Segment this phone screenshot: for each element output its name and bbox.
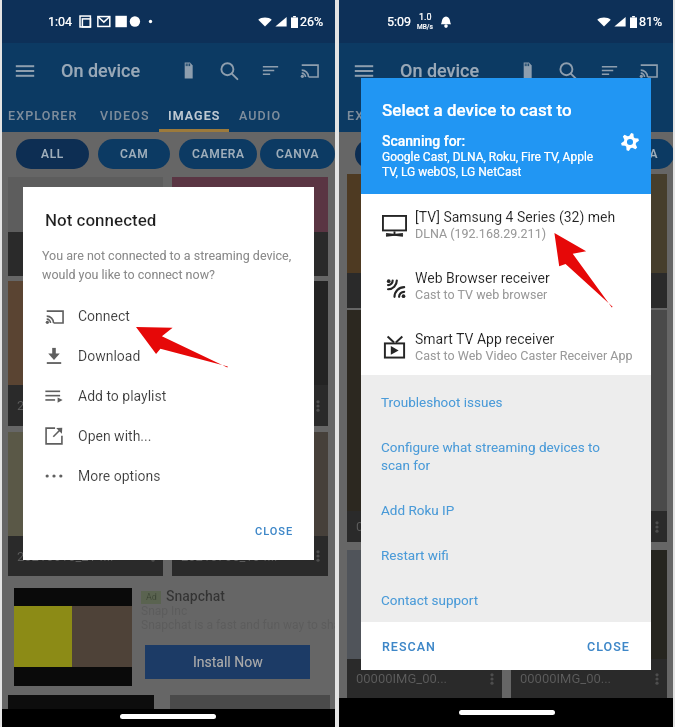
staticText: CAM [120,147,149,161]
button[interactable]: ALL [355,139,428,169]
button[interactable]: 20210610_214... [8,432,163,576]
staticText: 5:09 [387,14,412,29]
button[interactable]: More options [23,456,314,496]
button[interactable]: Open navigation drawer [344,43,384,98]
button[interactable]: 2 [172,281,328,426]
staticText: 26% [300,14,324,29]
button[interactable]: Connect [23,296,314,336]
button[interactable]: Smart TV App receiver [361,316,651,377]
button[interactable]: Search [209,43,249,98]
button[interactable]: CAMERA [179,139,257,169]
staticText: IMAGES [507,108,560,123]
button[interactable]: Troubleshoot issues [361,392,651,412]
staticText: ALL [41,147,65,161]
staticText: EXPLORER [8,108,78,123]
staticText: VIDEOS [100,108,150,123]
button[interactable] [8,177,163,276]
staticText: ALL [380,147,404,161]
button[interactable]: 2 [8,281,163,426]
button[interactable] [511,174,667,308]
staticText: Configure what streaming devices to scan… [381,439,600,473]
button[interactable]: Add to playlist [23,376,314,416]
staticText: 00000IMG_00... [520,671,612,686]
staticText: CAMERA [531,147,584,161]
button[interactable]: SD card [507,43,547,98]
button[interactable]: Configure what streaming devices to scan… [361,437,651,475]
button[interactable]: Web Browser receiver [361,255,651,316]
staticText: Contact support [381,592,479,608]
staticText: Cast to Web Video Caster Receiver App [415,348,633,363]
button[interactable]: Cast [289,43,329,98]
button[interactable]: CLOSE [241,517,308,546]
staticText: On device [400,60,480,81]
button[interactable]: VIDEOS [92,98,157,132]
staticText: Add Roku IP [381,502,455,518]
button[interactable]: EXPLORER [344,98,419,132]
button[interactable]: Install Now [145,645,310,679]
button[interactable]: CANVA [599,139,674,169]
staticText: IMAGES [168,108,221,123]
staticText: Scanning for: [382,133,466,149]
staticText: 81% [639,14,663,29]
staticText: Snapchat is a fast and fun way to shar [141,618,345,632]
staticText: 2 [17,398,25,413]
button[interactable]: VIDEOS [431,98,496,132]
button[interactable] [347,174,502,308]
button[interactable]: ALL [16,139,89,169]
staticText: Snap Inc [141,604,188,618]
staticText: CLOSE [255,525,294,538]
button[interactable]: Open navigation drawer [5,43,45,98]
staticText: EXPLORER [347,108,417,123]
staticText: CANVA [615,147,659,161]
staticText: 1.0 [419,12,432,23]
staticText: More options [78,468,161,484]
staticText: Cast to TV web browser [415,287,548,302]
staticText: Troubleshoot issues [381,394,503,410]
button[interactable]: RESCAN [375,631,443,662]
button[interactable]: [TV] Samsung 4 Series (32) meh [361,194,651,255]
staticText: CANVA [276,147,320,161]
staticText: Open with... [78,428,152,444]
button[interactable]: 00000IMG_00... [511,550,667,698]
staticText: CLOSE [587,639,630,654]
button[interactable]: EXPLORER [5,98,80,132]
button[interactable]: CAMERA [518,139,596,169]
button[interactable]: Download [23,336,314,376]
button[interactable] [172,177,328,276]
staticText: On device [61,60,141,81]
button[interactable]: Contact support [361,590,651,610]
button[interactable]: 20210705_104... [172,432,328,576]
staticText: MB/s [417,23,433,31]
button[interactable]: 00000IMG_00... [347,550,502,698]
staticText: DLNA (192.168.29.211) [415,226,547,241]
staticText: [TV] Samsung 4 Series (32) meh [415,209,616,225]
staticText: Connect [78,308,130,324]
button[interactable]: Open with... [23,416,314,456]
button[interactable]: CANVA [260,139,335,169]
staticText: 1:04 [48,14,73,29]
button[interactable]: AUDIO [230,98,290,132]
button[interactable]: Cast [628,43,668,98]
staticText: Snapchat [166,588,225,604]
button[interactable]: Add Roku IP [361,500,651,520]
button[interactable]: IMAGES [159,98,229,132]
staticText: 20210610_214... [17,549,114,564]
button[interactable]: CAM [98,139,170,169]
staticText: CAMERA [192,147,245,161]
staticText: Restart wifi [381,547,449,563]
staticText: Google Cast, DLNA, Roku, Fire TV, Apple … [382,150,610,179]
staticText: Smart TV App receiver [415,331,555,347]
button[interactable]: Settings [615,127,645,157]
button[interactable]: Restart wifi [361,545,651,565]
button[interactable]: Search [548,43,588,98]
button[interactable]: 0 [347,310,502,542]
button[interactable]: CLOSE [580,631,637,662]
button[interactable]: IMAGES [498,98,568,132]
button[interactable]: CAM [437,139,509,169]
button[interactable]: Sort [250,43,290,98]
button[interactable]: SD card [168,43,208,98]
button[interactable]: AUDIO [569,98,629,132]
button[interactable]: Sort [589,43,629,98]
button[interactable]: 0 [511,310,667,542]
